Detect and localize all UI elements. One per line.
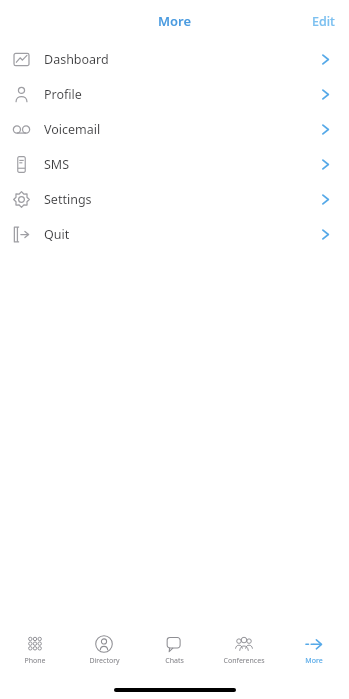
button[interactable]: Phone	[0, 627, 69, 673]
staticText: Edit	[312, 13, 335, 30]
staticText: Phone	[24, 656, 46, 666]
button[interactable]: Conferences	[209, 627, 279, 673]
staticText: Conferences	[223, 656, 265, 666]
staticText: More	[158, 12, 192, 30]
button[interactable]: More	[279, 627, 349, 673]
staticText: Profile	[44, 86, 82, 103]
staticText: Settings	[44, 191, 92, 208]
button[interactable]: Dashboard	[0, 42, 349, 77]
button[interactable]: Directory	[69, 627, 139, 673]
button[interactable]: Edit	[298, 5, 349, 38]
button[interactable]: Chats	[139, 627, 209, 673]
staticText: Directory	[89, 656, 120, 666]
button[interactable]: Quit	[0, 217, 349, 252]
staticText: Dashboard	[44, 51, 109, 68]
button[interactable]: Profile	[0, 77, 349, 112]
staticText: Quit	[44, 226, 70, 243]
staticText: Chats	[165, 656, 184, 666]
button[interactable]: Voicemail	[0, 112, 349, 147]
button[interactable]: SMS	[0, 147, 349, 182]
button[interactable]: Settings	[0, 182, 349, 217]
staticText: More	[305, 656, 323, 666]
staticText: Voicemail	[44, 121, 101, 138]
staticText: SMS	[44, 156, 70, 173]
